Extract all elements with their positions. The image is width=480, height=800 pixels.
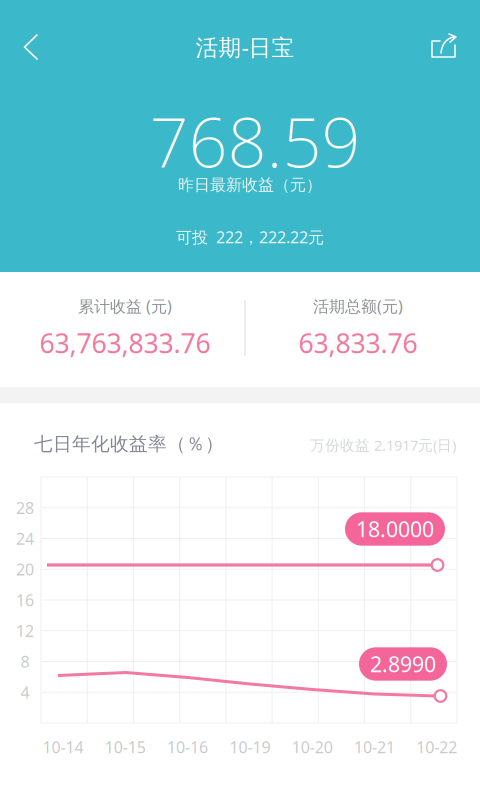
staticText: 8 — [20, 651, 29, 672]
staticText: 20 — [16, 559, 34, 580]
staticText: 10-20 — [292, 736, 333, 758]
staticText: 10-16 — [167, 736, 208, 758]
staticText: 10-22 — [416, 736, 457, 758]
staticText: 活期-日宝 — [195, 32, 294, 62]
staticText: 2.8990 — [370, 650, 436, 678]
staticText: 768.59 — [149, 96, 360, 186]
staticText: 4 — [20, 682, 29, 703]
staticText: 七日年化收益率（％） — [34, 432, 224, 455]
staticText: 10-19 — [229, 736, 270, 758]
staticText: 24 — [16, 528, 34, 549]
staticText: 昨日最新收益（元） — [178, 175, 322, 195]
staticText: 16 — [16, 589, 34, 611]
staticText: 10-14 — [42, 736, 83, 758]
staticText: 28 — [16, 497, 34, 518]
staticText: 10-15 — [105, 736, 146, 758]
staticText: 63,763,833.76 — [39, 325, 210, 361]
staticText: 万份收益 2.1917元(日) — [310, 435, 456, 455]
staticText: 18.0000 — [356, 515, 434, 543]
staticText: 12 — [16, 620, 34, 641]
button[interactable]: Back — [4, 20, 58, 74]
staticText: 10-21 — [354, 736, 395, 758]
staticText: 63,833.76 — [298, 325, 417, 361]
staticText: 活期总额(元) — [313, 295, 403, 317]
button[interactable]: Share — [416, 19, 472, 73]
staticText: 可投 222，222.22元 — [176, 226, 324, 248]
staticText: 累计收益 (元) — [78, 295, 172, 317]
